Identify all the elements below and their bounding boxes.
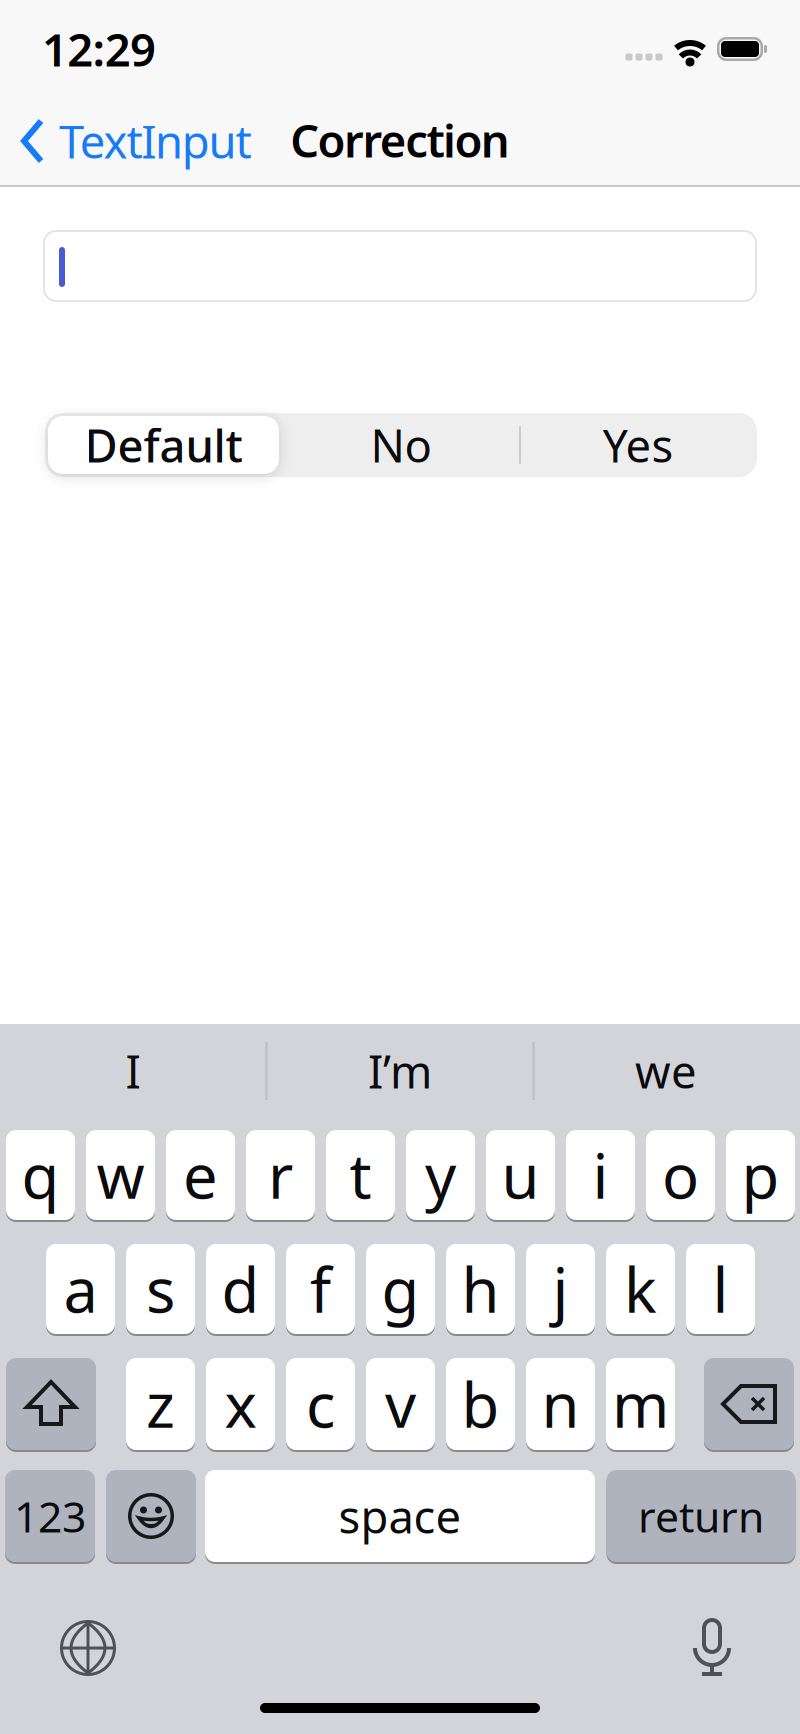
button[interactable]: Text field [43, 230, 757, 302]
button[interactable]: x [206, 1357, 275, 1451]
staticText: I [125, 1041, 140, 1101]
button[interactable]: s [126, 1243, 195, 1335]
staticText: return [638, 1488, 764, 1544]
staticText: 123 [14, 1488, 86, 1544]
button[interactable]: Numbers [5, 1469, 95, 1563]
staticText: r [268, 1134, 293, 1216]
staticText: p [741, 1134, 779, 1216]
button[interactable]: Emoji [106, 1469, 196, 1563]
button[interactable]: Next keyboard [58, 1618, 118, 1678]
button[interactable]: Dictation [690, 1616, 734, 1680]
button[interactable]: m [606, 1357, 675, 1451]
button[interactable]: Default [48, 416, 279, 474]
staticText: o [662, 1134, 699, 1216]
staticText: Yes [602, 415, 673, 475]
button[interactable]: e [166, 1129, 235, 1221]
staticText: we [635, 1041, 697, 1101]
staticText: z [146, 1363, 175, 1445]
button[interactable]: u [486, 1129, 555, 1221]
staticText: c [306, 1363, 335, 1445]
staticText: x [224, 1363, 256, 1445]
staticText: v [385, 1363, 416, 1445]
staticText: u [501, 1134, 539, 1216]
button[interactable]: l [686, 1243, 755, 1335]
button[interactable]: we [536, 1024, 796, 1118]
button[interactable]: i [566, 1129, 635, 1221]
button[interactable]: c [286, 1357, 355, 1451]
button[interactable]: y [406, 1129, 475, 1221]
button[interactable]: I’m [270, 1024, 530, 1118]
button[interactable]: Shift [6, 1357, 96, 1451]
button[interactable]: v [366, 1357, 435, 1451]
staticText: b [461, 1363, 499, 1445]
staticText: Correction [290, 110, 510, 170]
staticText: s [146, 1248, 175, 1330]
staticText: l [712, 1248, 728, 1330]
staticText: w [96, 1134, 144, 1216]
staticText: d [221, 1248, 259, 1330]
button[interactable]: return [606, 1469, 795, 1563]
button[interactable]: f [286, 1243, 355, 1335]
button[interactable]: t [326, 1129, 395, 1221]
button[interactable]: p [726, 1129, 795, 1221]
button[interactable]: q [6, 1129, 75, 1221]
button[interactable]: h [446, 1243, 515, 1335]
staticText: i [592, 1134, 608, 1216]
staticText: k [624, 1248, 657, 1330]
button[interactable]: a [46, 1243, 115, 1335]
button[interactable]: n [526, 1357, 595, 1451]
button[interactable]: b [446, 1357, 515, 1451]
staticText: space [338, 1486, 461, 1546]
staticText: I’m [368, 1041, 432, 1101]
staticText: j [552, 1248, 568, 1330]
staticText: t [349, 1134, 371, 1216]
staticText: 12:29 [42, 19, 156, 79]
button[interactable]: I [3, 1024, 263, 1118]
button[interactable]: z [126, 1357, 195, 1451]
button[interactable]: No [286, 413, 516, 477]
button[interactable]: g [366, 1243, 435, 1335]
staticText: f [310, 1248, 331, 1330]
staticText: q [21, 1134, 59, 1216]
staticText: h [461, 1248, 499, 1330]
staticText: e [183, 1134, 218, 1216]
staticText: a [63, 1248, 97, 1330]
staticText: g [381, 1248, 419, 1330]
button[interactable]: o [646, 1129, 715, 1221]
staticText: Default [84, 415, 242, 475]
button[interactable]: d [206, 1243, 275, 1335]
button[interactable]: w [86, 1129, 155, 1221]
button[interactable]: space [205, 1469, 595, 1563]
staticText: TextInput [59, 111, 251, 171]
button[interactable]: k [606, 1243, 675, 1335]
button[interactable]: Delete [704, 1357, 794, 1451]
staticText: m [612, 1363, 669, 1445]
button[interactable]: j [526, 1243, 595, 1335]
staticText: No [370, 415, 431, 475]
staticText: n [541, 1363, 579, 1445]
button[interactable]: r [246, 1129, 315, 1221]
button[interactable]: Back [20, 113, 340, 169]
staticText: y [425, 1134, 456, 1216]
button[interactable]: Yes [523, 413, 753, 477]
